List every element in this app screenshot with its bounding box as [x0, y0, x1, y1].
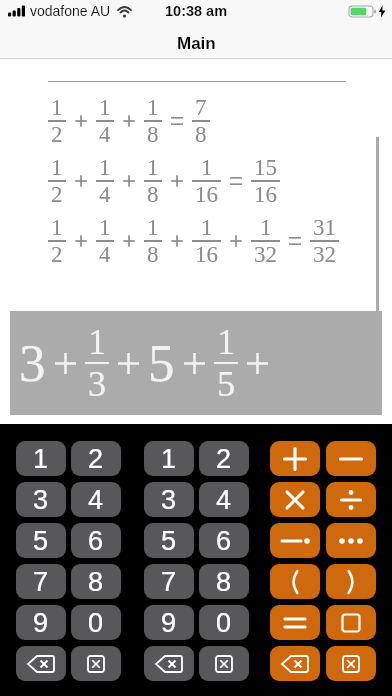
button[interactable]: [326, 646, 376, 681]
staticText: 4: [88, 485, 104, 515]
staticText: 3: [161, 485, 177, 515]
button[interactable]: 9: [16, 605, 66, 640]
button[interactable]: [71, 646, 121, 681]
button[interactable]: 7: [16, 564, 66, 599]
button[interactable]: 9: [144, 605, 194, 640]
staticText: 8: [147, 182, 159, 207]
staticText: 0: [216, 608, 232, 638]
staticText: 2: [51, 122, 63, 147]
staticText: 16: [195, 182, 218, 207]
staticText: 7: [33, 567, 49, 597]
button[interactable]: [326, 523, 376, 558]
staticText: 8: [147, 122, 159, 147]
staticText: 0: [88, 608, 104, 638]
staticText: 7: [195, 95, 207, 120]
button[interactable]: 1: [144, 441, 194, 476]
staticText: 4: [99, 122, 111, 147]
button[interactable]: 5: [16, 523, 66, 558]
button[interactable]: [326, 441, 376, 476]
button[interactable]: [326, 564, 376, 599]
staticText: 1: [33, 444, 49, 474]
staticText: 1: [88, 322, 106, 362]
staticText: 1: [51, 215, 63, 240]
staticText: 3: [19, 334, 46, 393]
staticText: 1: [201, 215, 213, 240]
button[interactable]: [326, 605, 376, 640]
button[interactable]: [16, 646, 66, 681]
staticText: 2: [51, 242, 63, 267]
button[interactable]: 7: [144, 564, 194, 599]
staticText: 6: [88, 526, 104, 556]
button[interactable]: 0: [71, 605, 121, 640]
button[interactable]: [270, 441, 320, 476]
staticText: 4: [99, 242, 111, 267]
button[interactable]: 5: [144, 523, 194, 558]
staticText: 16: [254, 182, 277, 207]
staticText: 9: [33, 608, 49, 638]
staticText: 1: [147, 155, 159, 180]
staticText: 8: [88, 567, 104, 597]
button[interactable]: [326, 482, 376, 517]
staticText: 8: [216, 567, 232, 597]
staticText: 6: [216, 526, 232, 556]
staticText: 1: [201, 155, 213, 180]
staticText: 8: [195, 122, 207, 147]
staticText: 4: [99, 182, 111, 207]
staticText: 2: [88, 444, 104, 474]
button[interactable]: 6: [199, 523, 249, 558]
button[interactable]: 6: [71, 523, 121, 558]
staticText: 1: [99, 95, 111, 120]
staticText: 2: [216, 444, 232, 474]
staticText: 1: [99, 215, 111, 240]
staticText: 32: [254, 242, 277, 267]
staticText: 15: [254, 155, 277, 180]
staticText: 1: [51, 95, 63, 120]
staticText: 31: [313, 215, 336, 240]
button[interactable]: 3: [144, 482, 194, 517]
staticText: 16: [195, 242, 218, 267]
button[interactable]: [270, 646, 320, 681]
staticText: Main: [177, 34, 216, 53]
staticText: 4: [216, 485, 232, 515]
button[interactable]: 4: [71, 482, 121, 517]
button[interactable]: [270, 482, 320, 517]
staticText: 1: [147, 215, 159, 240]
button[interactable]: 2: [199, 441, 249, 476]
button[interactable]: [199, 646, 249, 681]
button[interactable]: [270, 564, 320, 599]
staticText: 1: [147, 95, 159, 120]
button[interactable]: 4: [199, 482, 249, 517]
staticText: 32: [313, 242, 336, 267]
staticText: 5: [161, 526, 177, 556]
staticText: 5: [33, 526, 49, 556]
button[interactable]: 0: [199, 605, 249, 640]
button[interactable]: [270, 523, 320, 558]
staticText: 5: [217, 364, 235, 404]
button[interactable]: 3: [16, 482, 66, 517]
button[interactable]: 2: [71, 441, 121, 476]
staticText: 2: [51, 182, 63, 207]
staticText: 1: [161, 444, 177, 474]
button[interactable]: [270, 605, 320, 640]
button[interactable]: 8: [199, 564, 249, 599]
staticText: 1: [217, 322, 235, 362]
staticText: 9: [161, 608, 177, 638]
staticText: 3: [33, 485, 49, 515]
staticText: 1: [51, 155, 63, 180]
staticText: 1: [99, 155, 111, 180]
staticText: 5: [148, 334, 175, 393]
button[interactable]: [144, 646, 194, 681]
staticText: 8: [147, 242, 159, 267]
staticText: 1: [260, 215, 272, 240]
staticText: vodafone AU: [30, 3, 111, 19]
button[interactable]: 8: [71, 564, 121, 599]
button[interactable]: 1: [16, 441, 66, 476]
staticText: 7: [161, 567, 177, 597]
staticText: 3: [88, 364, 106, 404]
staticText: 10:38 am: [165, 3, 228, 19]
